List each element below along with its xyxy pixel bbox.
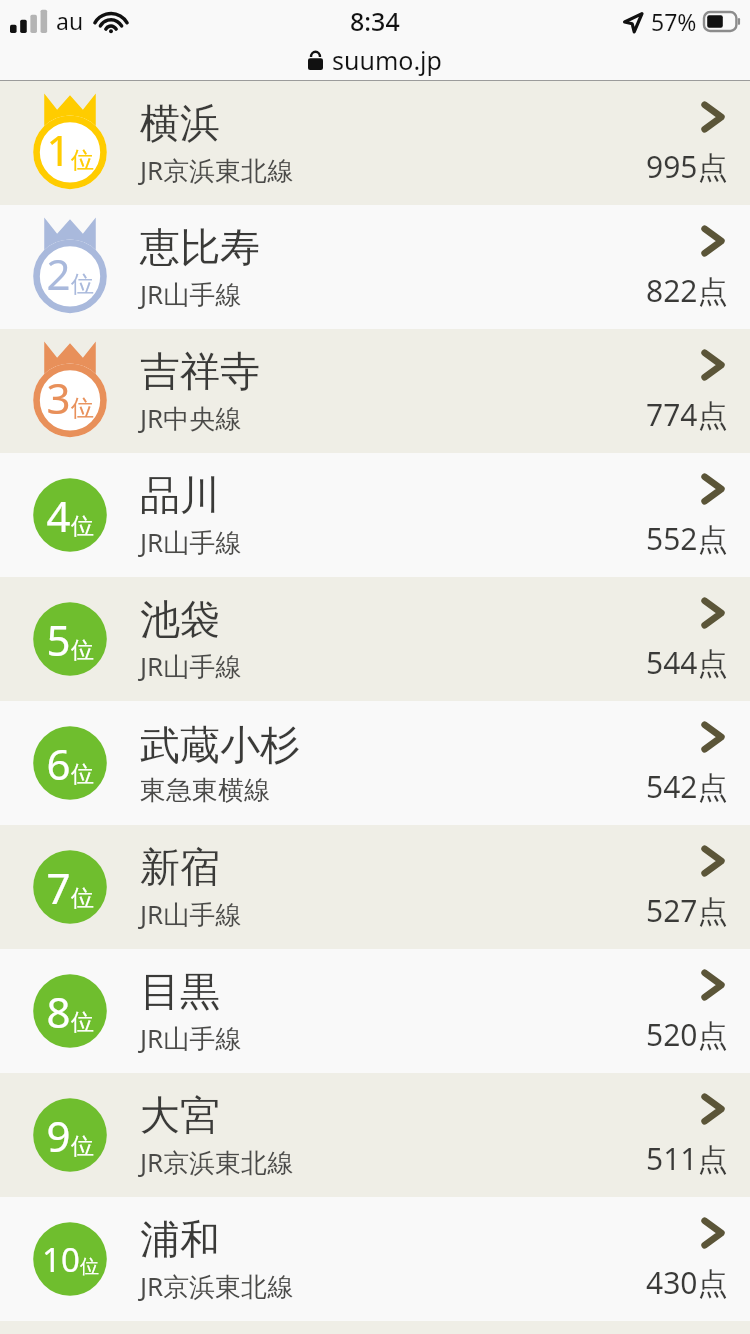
staticText: 520点 xyxy=(646,1014,728,1055)
staticText: 10 xyxy=(42,1237,80,1282)
staticText: 位 xyxy=(71,1132,94,1161)
button[interactable]: 10 xyxy=(0,1197,750,1321)
staticText: 774点 xyxy=(646,394,728,435)
staticText: 8 xyxy=(46,983,71,1040)
staticText: JR山手線 xyxy=(140,524,242,560)
staticText: 544点 xyxy=(646,642,728,683)
other: 詳細を見る xyxy=(698,968,728,1002)
staticText: 吉祥寺 xyxy=(140,346,260,396)
other: 詳細を見る xyxy=(698,100,728,134)
staticText: 浦和 xyxy=(140,1214,220,1264)
staticText: 511点 xyxy=(646,1138,728,1179)
button[interactable]: 4 xyxy=(0,453,750,577)
staticText: 位 xyxy=(71,1008,94,1037)
staticText: 位 xyxy=(71,146,94,175)
button[interactable]: 8 xyxy=(0,949,750,1073)
staticText: JR山手線 xyxy=(140,1020,242,1056)
staticText: 552点 xyxy=(646,518,728,559)
staticText: 品川 xyxy=(140,470,220,520)
button[interactable]: suumo.jp xyxy=(0,40,750,80)
staticText: JR中央線 xyxy=(140,400,242,436)
staticText: JR山手線 xyxy=(140,648,242,684)
other: 詳細を見る xyxy=(698,348,728,382)
other: 詳細を見る xyxy=(698,720,728,754)
other: 詳細を見る xyxy=(698,844,728,878)
staticText: 位 xyxy=(80,1255,99,1279)
staticText: JR京浜東北線 xyxy=(140,1268,294,1304)
staticText: 位 xyxy=(71,636,94,665)
button[interactable]: 1 xyxy=(0,81,750,205)
other: 詳細を見る xyxy=(698,472,728,506)
staticText: 3 xyxy=(46,369,71,426)
staticText: 4 xyxy=(46,487,71,544)
staticText: 位 xyxy=(71,394,94,423)
staticText: 995点 xyxy=(646,146,728,187)
staticText: 武蔵小杉 xyxy=(140,720,300,770)
staticText: 8:34 xyxy=(350,4,400,38)
staticText: 430点 xyxy=(646,1262,728,1303)
staticText: 恵比寿 xyxy=(140,222,260,272)
staticText: 位 xyxy=(71,760,94,789)
staticText: 822点 xyxy=(646,270,728,311)
other: 詳細を見る xyxy=(698,224,728,258)
staticText: JR京浜東北線 xyxy=(140,1144,294,1180)
staticText: 位 xyxy=(71,884,94,913)
staticText: au xyxy=(56,5,84,36)
other: 詳細を見る xyxy=(698,1216,728,1250)
other: 詳細を見る xyxy=(698,596,728,630)
other: 詳細を見る xyxy=(698,1092,728,1126)
staticText: JR山手線 xyxy=(140,896,242,932)
button[interactable]: 3 xyxy=(0,329,750,453)
button[interactable]: 5 xyxy=(0,577,750,701)
staticText: 9 xyxy=(46,1107,71,1164)
staticText: 東急東横線 xyxy=(140,774,270,807)
staticText: 5 xyxy=(46,611,71,668)
staticText: 新宿 xyxy=(140,842,220,892)
staticText: 57% xyxy=(651,6,697,37)
staticText: 池袋 xyxy=(140,594,220,644)
button[interactable]: 7 xyxy=(0,825,750,949)
button[interactable]: 2 xyxy=(0,205,750,329)
button[interactable]: 9 xyxy=(0,1073,750,1197)
staticText: 6 xyxy=(46,735,71,792)
staticText: 横浜 xyxy=(140,98,220,148)
staticText: 2 xyxy=(46,245,71,302)
staticText: JR山手線 xyxy=(140,276,242,312)
staticText: 目黒 xyxy=(140,966,220,1016)
staticText: 位 xyxy=(71,270,94,299)
staticText: 7 xyxy=(46,859,71,916)
staticText: 527点 xyxy=(646,890,728,931)
button[interactable]: 6 xyxy=(0,701,750,825)
staticText: suumo.jp xyxy=(332,43,442,77)
staticText: JR京浜東北線 xyxy=(140,152,294,188)
staticText: 1 xyxy=(46,121,71,178)
staticText: 542点 xyxy=(646,766,728,807)
staticText: 大宮 xyxy=(140,1090,220,1140)
staticText: 位 xyxy=(71,512,94,541)
